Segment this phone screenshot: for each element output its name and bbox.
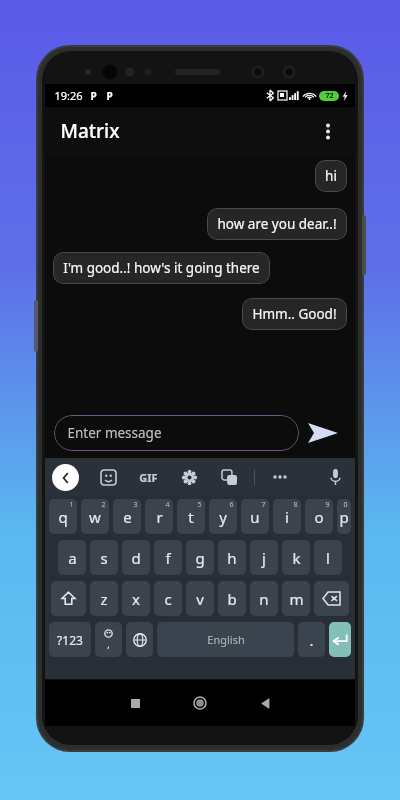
button[interactable] [51,581,86,616]
staticText: j [262,548,266,568]
staticText: 4 [165,500,170,510]
button[interactable]: b [218,581,246,616]
button[interactable]: More [267,464,293,490]
staticText: t [188,507,194,527]
staticText: 1 [69,500,74,510]
staticText: e [123,507,132,527]
button[interactable]: k [282,540,310,575]
staticText: Hmm.. Good! [252,305,337,323]
staticText: 72 [325,91,334,101]
button[interactable]: i [273,499,301,534]
button[interactable]: v [186,581,214,616]
button[interactable]: English [157,622,294,657]
button[interactable]: Voice input [322,464,348,490]
staticText: w [89,507,101,527]
button[interactable]: a [58,540,86,575]
button[interactable]: j [250,540,278,575]
staticText: s [100,548,108,568]
button[interactable]: Back [52,464,79,491]
staticText: p [339,507,349,527]
button[interactable]: l [314,540,342,575]
staticText: P [90,89,97,103]
staticText: GIF [139,470,158,485]
button[interactable]: Recent apps [120,688,150,718]
button[interactable]: h [218,540,246,575]
button[interactable]: o [305,499,333,534]
button[interactable]: hi [315,160,347,192]
button[interactable]: f [154,540,182,575]
button[interactable]: m [282,581,310,616]
button[interactable]: u [241,499,269,534]
button[interactable]: More options [310,113,346,149]
button[interactable]: . [298,622,325,657]
staticText: Matrix [60,118,120,144]
button[interactable]: d [122,540,150,575]
button[interactable]: p [337,499,351,534]
staticText: ?123 [57,632,83,648]
button[interactable]: GIF [135,466,162,489]
button[interactable]: t [177,499,205,534]
staticText: m [289,589,304,609]
button[interactable]: g [186,540,214,575]
staticText: 6 [229,500,234,510]
staticText: b [227,589,237,609]
staticText: l [326,548,330,568]
button[interactable]: Translate [216,464,242,490]
staticText: , [107,638,110,650]
button[interactable]: Enter message [54,415,299,451]
staticText: 2 [101,500,106,510]
button[interactable]: Home [185,688,215,718]
button[interactable]: e [113,499,141,534]
button[interactable]: ?123 [49,622,91,657]
staticText: how are you dear..! [217,215,337,233]
button[interactable]: Hmm.. Good! [242,298,347,330]
button[interactable]: I'm good..! how's it going there [53,252,270,284]
button[interactable]: x [122,581,150,616]
staticText: v [196,589,204,609]
button[interactable]: Stickers [95,464,121,490]
staticText: 5 [197,500,202,510]
button[interactable]: Back [250,688,280,718]
staticText: q [58,507,68,527]
button[interactable]: , [95,622,122,657]
staticText: English [207,632,245,647]
button[interactable] [126,622,153,657]
staticText: P [106,89,113,103]
staticText: 9 [325,500,330,510]
button[interactable] [314,581,349,616]
staticText: y [219,507,227,527]
button[interactable]: c [154,581,182,616]
staticText: a [68,548,77,568]
button[interactable]: z [90,581,118,616]
button[interactable] [329,622,351,657]
button[interactable]: w [81,499,109,534]
staticText: z [100,589,108,609]
staticText: hi [325,167,337,185]
button[interactable]: how are you dear..! [207,208,347,240]
staticText: I'm good..! how's it going there [63,259,260,277]
button[interactable]: Send [299,409,347,457]
staticText: 7 [261,500,266,510]
button[interactable]: q [49,499,77,534]
button[interactable]: r [145,499,173,534]
staticText: i [285,507,289,527]
staticText: x [132,589,140,609]
staticText: o [314,507,324,527]
button[interactable]: s [90,540,118,575]
staticText: 0 [343,500,348,510]
staticText: f [165,548,171,568]
button[interactable]: y [209,499,237,534]
staticText: u [250,507,260,527]
staticText: 8 [293,500,298,510]
staticText: g [195,548,205,568]
staticText: h [227,548,237,568]
staticText: d [131,548,141,568]
button[interactable]: n [250,581,278,616]
button[interactable]: Settings [176,464,202,490]
staticText: c [164,589,172,609]
staticText: . [309,630,314,650]
staticText: r [156,507,163,527]
staticText: n [259,589,269,609]
staticText: Enter message [67,424,162,442]
staticText: 19:26 [54,88,83,103]
